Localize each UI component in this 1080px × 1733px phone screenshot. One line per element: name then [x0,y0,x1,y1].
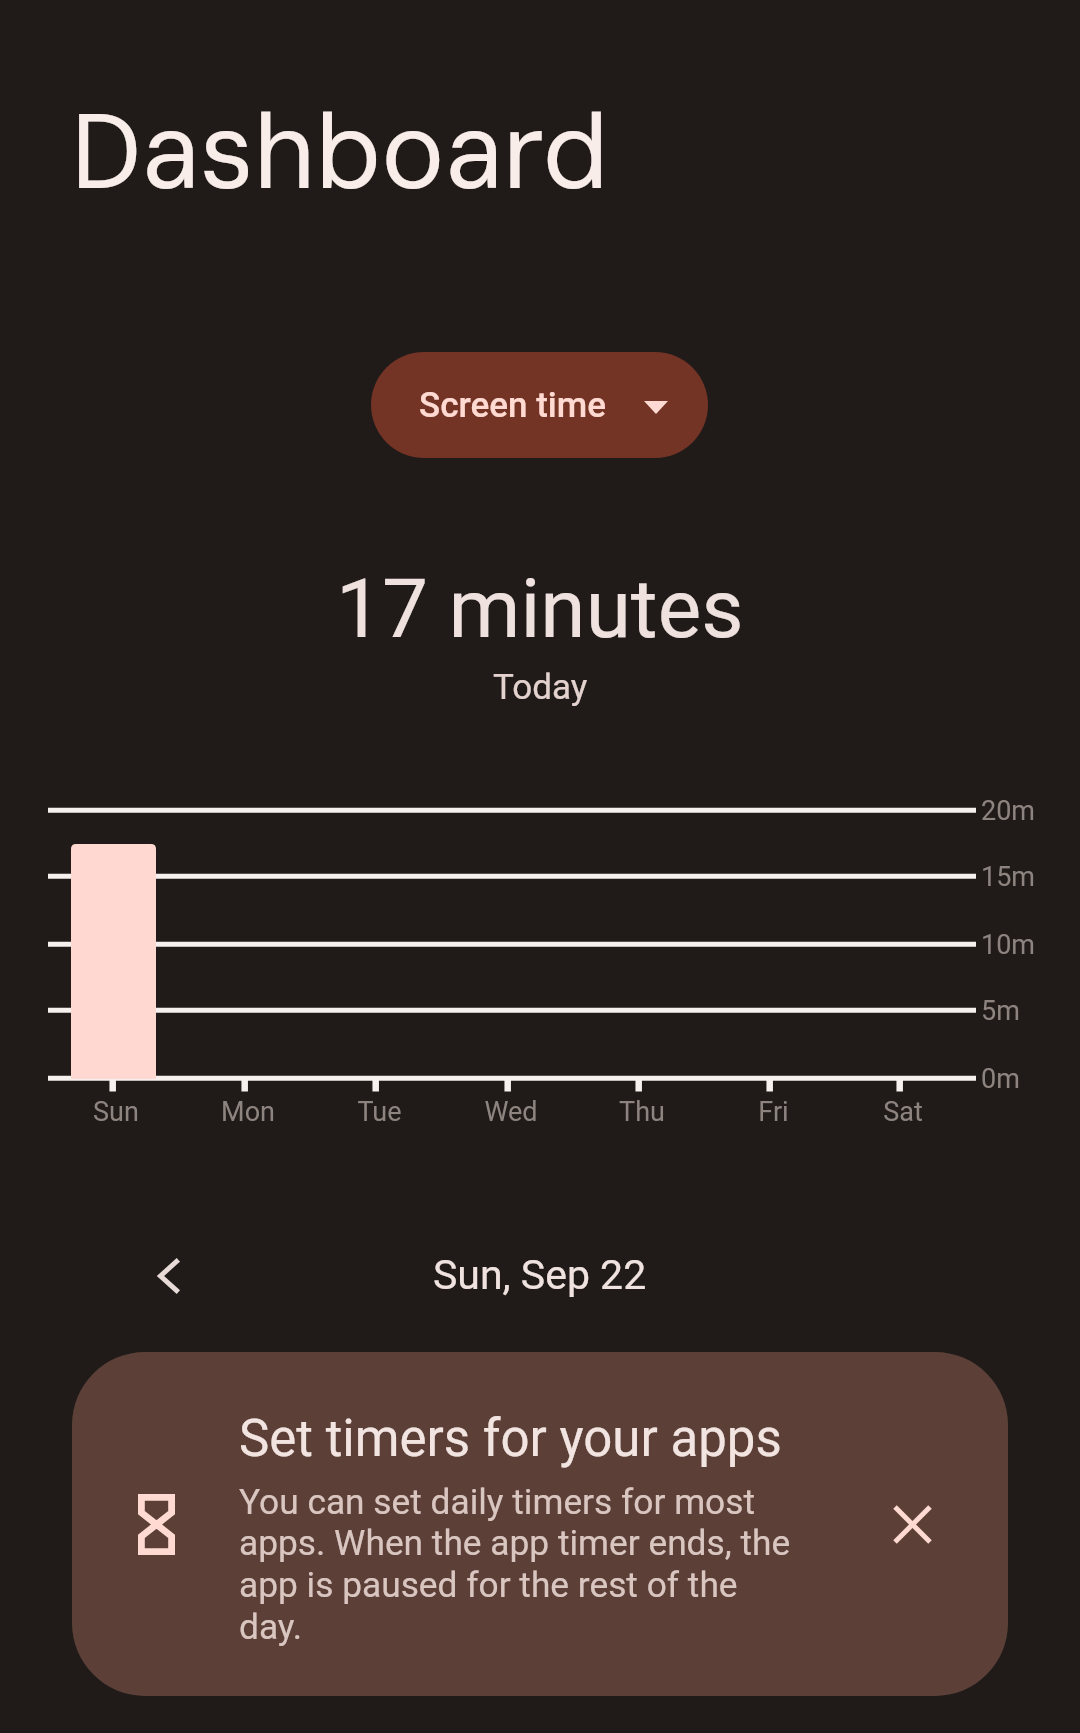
staticText: Dashboard [71,83,609,221]
staticText: Sun, Sep 22 [433,1251,647,1299]
staticText: 20m [981,795,1036,827]
staticText: Today [493,667,588,708]
staticText: Sun [93,1096,139,1128]
button[interactable]: Sat [843,1096,963,1136]
staticText: Mon [221,1096,275,1128]
button[interactable]: Fri [713,1096,833,1136]
button[interactable]: Screen time [371,352,708,458]
button[interactable]: Thu [582,1096,702,1136]
staticText: Set timers for your apps [239,1409,782,1469]
staticText: 0m [981,1063,1020,1095]
button[interactable]: Sun [56,1096,176,1136]
staticText: 5m [981,995,1020,1027]
button[interactable]: Set timers for your apps [72,1352,1008,1696]
staticText: Wed [484,1096,538,1128]
staticText: 17 minutes [336,561,744,657]
staticText: Fri [758,1096,789,1128]
staticText: Screen time [419,385,607,426]
button[interactable]: Tue [319,1096,439,1136]
staticText: You can set daily timers for most apps. … [239,1481,804,1648]
staticText: 10m [981,929,1036,961]
button[interactable]: Mon [188,1096,308,1136]
button[interactable]: Previous day [128,1236,208,1316]
staticText: Thu [619,1096,665,1128]
staticText: 15m [981,861,1036,893]
button[interactable]: Wed [451,1096,571,1136]
staticText: Sat [883,1096,923,1128]
button[interactable]: Dismiss [872,1484,952,1564]
staticText: Tue [357,1096,402,1128]
